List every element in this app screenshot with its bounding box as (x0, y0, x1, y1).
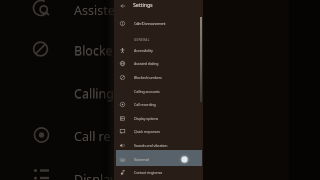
button[interactable]: Contact ringtones (114, 169, 203, 180)
staticText: Quick responses (134, 129, 160, 134)
staticText: Assisted dialing (134, 61, 159, 66)
staticText: Assiste (74, 2, 115, 19)
staticText: Display (74, 171, 117, 180)
button[interactable]: Call recording (114, 101, 203, 115)
button[interactable]: Blocked numbers (114, 74, 203, 88)
staticText: Sounds and vibration (134, 143, 168, 148)
staticText: Blocke (74, 43, 113, 60)
staticText: Calling (74, 86, 115, 103)
staticText: Blocke (74, 42, 113, 59)
staticText: Assiste (74, 2, 115, 19)
button[interactable]: Back (119, 2, 127, 10)
staticText: Caller ID announcement (134, 21, 166, 26)
staticText: Calling accounts (134, 89, 160, 94)
button[interactable]: Quick responses (114, 128, 203, 142)
staticText: Contact ringtones (134, 170, 163, 175)
staticText: Settings (133, 1, 153, 8)
staticText: Display (74, 171, 117, 180)
button[interactable]: Assisted dialing (114, 60, 203, 74)
staticText: Blocked numbers (134, 75, 162, 80)
staticText: Call re (74, 128, 111, 145)
button[interactable]: Display options (114, 115, 203, 129)
button[interactable]: Caller ID announcement (114, 20, 203, 34)
staticText: GENERAL (134, 38, 150, 42)
staticText: Accessibility (134, 48, 153, 53)
staticText: Call recording (134, 102, 156, 107)
button[interactable]: Sounds and vibration (114, 142, 203, 156)
staticText: Display options (134, 116, 159, 121)
button[interactable]: Voicemail (114, 156, 203, 170)
staticText: Calling (74, 85, 115, 102)
staticText: Call re (74, 128, 111, 145)
button[interactable]: Back (114, 0, 203, 16)
staticText: Voicemail (134, 157, 150, 162)
button[interactable]: Calling accounts (114, 88, 203, 102)
button[interactable]: Accessibility (114, 47, 203, 61)
